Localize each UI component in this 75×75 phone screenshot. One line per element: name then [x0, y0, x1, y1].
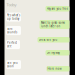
staticText: Perfect see	[7, 41, 17, 48]
staticText: See you soon	[7, 61, 18, 68]
staticText: Today	[6, 2, 16, 7]
staticText: Sure sounds	[7, 27, 17, 34]
staticText: Great see you	[38, 38, 57, 41]
staticText: Hey are you free	[46, 7, 68, 10]
staticText: Want to grab some lunch later on	[40, 21, 65, 28]
staticText: Here now	[47, 67, 61, 70]
staticText: Yes what's up today	[7, 13, 20, 21]
staticText: On my way	[46, 51, 59, 54]
